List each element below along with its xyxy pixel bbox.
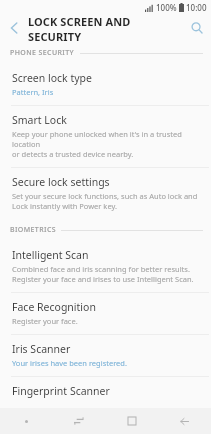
staticText: Combined face and iris scanning for bett… (12, 264, 194, 284)
button[interactable]: Switch keyboard (52, 408, 105, 434)
staticText: Iris Scanner (12, 342, 71, 356)
staticText: Register your face. (12, 316, 78, 326)
staticText: LOCK SCREEN AND SECURITY (28, 14, 183, 42)
staticText: Fingerprint Scanner (12, 384, 110, 398)
button[interactable]: Search (183, 14, 211, 42)
staticText: Your irises have been registered. (12, 358, 127, 368)
staticText: Screen lock type (12, 71, 92, 85)
staticText: PHONE SECURITY (10, 48, 75, 58)
button[interactable]: Iris Scanner (0, 335, 211, 376)
staticText: BIOMETRICS (10, 225, 56, 235)
button[interactable]: Back (158, 408, 211, 434)
button[interactable]: Intelligent Scan (0, 241, 211, 292)
staticText: Pattern, Iris (12, 87, 54, 97)
staticText: Face Recognition (12, 300, 96, 314)
staticText: Intelligent Scan (12, 248, 89, 262)
button[interactable]: Back (0, 14, 28, 42)
button[interactable]: Recents (105, 408, 158, 434)
staticText: Secure lock settings (12, 175, 110, 189)
staticText: Keep your phone unlocked when it's in a … (12, 129, 199, 159)
staticText: 10:00 (186, 2, 207, 13)
staticText: 100% (156, 2, 177, 13)
button[interactable]: Smart Lock (0, 106, 211, 167)
staticText: Set your secure lock functions, such as … (12, 191, 198, 211)
staticText: Smart Lock (12, 113, 67, 127)
button[interactable]: Fingerprint Scanner (0, 377, 211, 408)
button[interactable]: Secure lock settings (0, 168, 211, 219)
button[interactable]: Face Recognition (0, 293, 211, 334)
button[interactable]: Menu (0, 408, 52, 434)
button[interactable]: Screen lock type (0, 64, 211, 105)
